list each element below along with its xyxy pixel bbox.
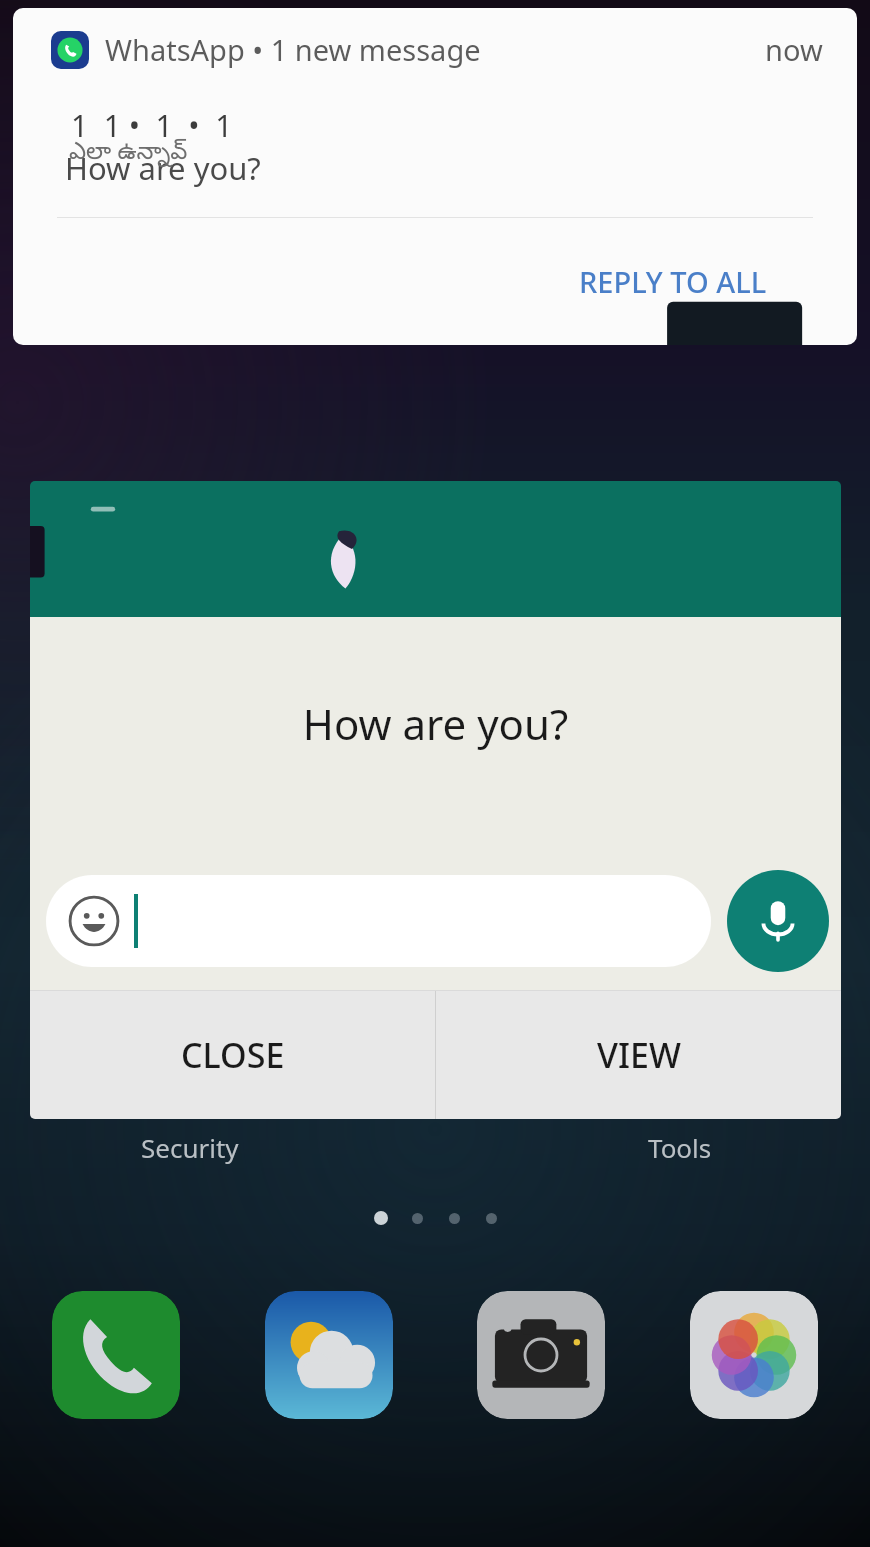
button[interactable]: Phone [52,1291,180,1419]
button[interactable]: VIEW [436,991,841,1119]
button[interactable] [46,875,711,967]
button[interactable]: Security [100,1046,280,1165]
button[interactable]: WhatsApp • 1 new message [13,8,857,345]
staticText: 1 1 • 1 • 1 [71,105,233,146]
button[interactable]: REPLY TO ALL [569,254,777,309]
button[interactable]: CLOSE [30,991,435,1119]
staticText: ఎలా ఉన్నావ్ [69,133,188,170]
staticText: WhatsApp • 1 new message [105,30,481,69]
staticText: REPLY TO ALL [579,262,767,301]
staticText: now [765,30,823,69]
button[interactable]: Camera [477,1291,605,1419]
button[interactable]: Photos [690,1291,818,1419]
staticText: Tools [648,1130,712,1165]
staticText: How are you? [65,147,261,189]
button[interactable]: Weather [265,1291,393,1419]
staticText: Security [141,1130,239,1165]
staticText: VIEW [597,1032,681,1078]
staticText: How are you? [30,695,841,752]
button[interactable]: Voice input [727,870,829,972]
button[interactable]: Tools [590,1046,770,1165]
staticText: CLOSE [181,1032,285,1078]
